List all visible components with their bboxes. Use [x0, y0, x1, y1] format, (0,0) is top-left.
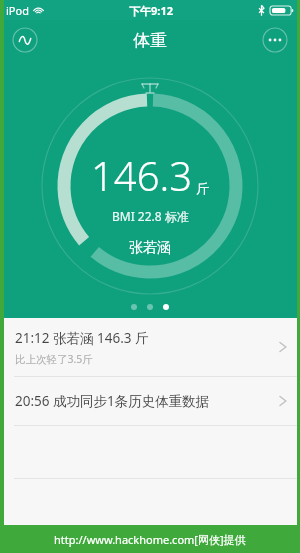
- staticText: 20:56 成功同步1条历史体重数据: [15, 392, 278, 410]
- staticText: 146.3: [91, 148, 193, 202]
- staticText: 下午9:12: [129, 3, 173, 18]
- button[interactable]: More options: [262, 27, 288, 53]
- staticText: 斤: [196, 180, 209, 196]
- staticText: 比上次轻了3.5斤: [15, 352, 93, 366]
- button[interactable]: Page 3: [163, 304, 169, 310]
- button[interactable]: 21:12 张若涵 146.3 斤: [0, 318, 300, 376]
- staticText: BMI 22.8 标准: [112, 208, 189, 224]
- staticText: 21:12 张若涵 146.3 斤: [15, 329, 149, 347]
- button[interactable]: Trend: [12, 27, 38, 53]
- staticText: 张若涵: [129, 239, 171, 257]
- staticText: 体重: [133, 30, 167, 51]
- button[interactable]: Page 1: [131, 304, 137, 310]
- button[interactable]: 20:56 成功同步1条历史体重数据: [0, 377, 300, 425]
- button[interactable]: Page 2: [147, 304, 153, 310]
- staticText: http://www.hackhome.com[网侠]提供: [54, 532, 246, 547]
- staticText: iPod: [6, 3, 29, 18]
